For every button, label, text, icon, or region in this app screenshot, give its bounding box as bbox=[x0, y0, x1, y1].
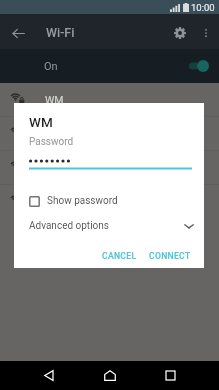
button[interactable]: More options bbox=[195, 22, 217, 44]
button[interactable]: Settings bbox=[165, 18, 195, 48]
button[interactable]: Advanced options bbox=[14, 215, 204, 237]
staticText: WMA-Guest bbox=[45, 128, 101, 140]
button[interactable]: WMA-Guest bbox=[0, 117, 219, 150]
staticText: Advanced options bbox=[29, 220, 109, 232]
staticText: WM bbox=[29, 114, 53, 130]
button[interactable]: Hotspot bbox=[0, 185, 219, 218]
staticText: On bbox=[44, 60, 58, 73]
staticText: CONNECT bbox=[149, 251, 191, 261]
button[interactable]: Navigate up bbox=[2, 17, 34, 49]
button[interactable]: CANCEL bbox=[96, 246, 143, 266]
button[interactable]: AndroidAP bbox=[0, 151, 219, 184]
button[interactable]: Home bbox=[92, 361, 128, 390]
button[interactable]: WM bbox=[0, 83, 219, 116]
staticText: Password bbox=[29, 136, 74, 148]
button[interactable]: Back bbox=[31, 361, 67, 390]
staticText: WM bbox=[45, 94, 64, 106]
button[interactable]: CONNECT bbox=[143, 246, 197, 266]
staticText: Hotspot bbox=[45, 196, 83, 208]
staticText: CANCEL bbox=[102, 251, 137, 261]
staticText: 10:00 bbox=[191, 2, 215, 13]
button[interactable]: Recent apps bbox=[152, 361, 188, 390]
staticText: AndroidAP bbox=[45, 162, 95, 174]
staticText: Wi-Fi bbox=[46, 25, 75, 40]
staticText: Show password bbox=[47, 195, 118, 207]
button[interactable]: Show password bbox=[14, 191, 204, 211]
